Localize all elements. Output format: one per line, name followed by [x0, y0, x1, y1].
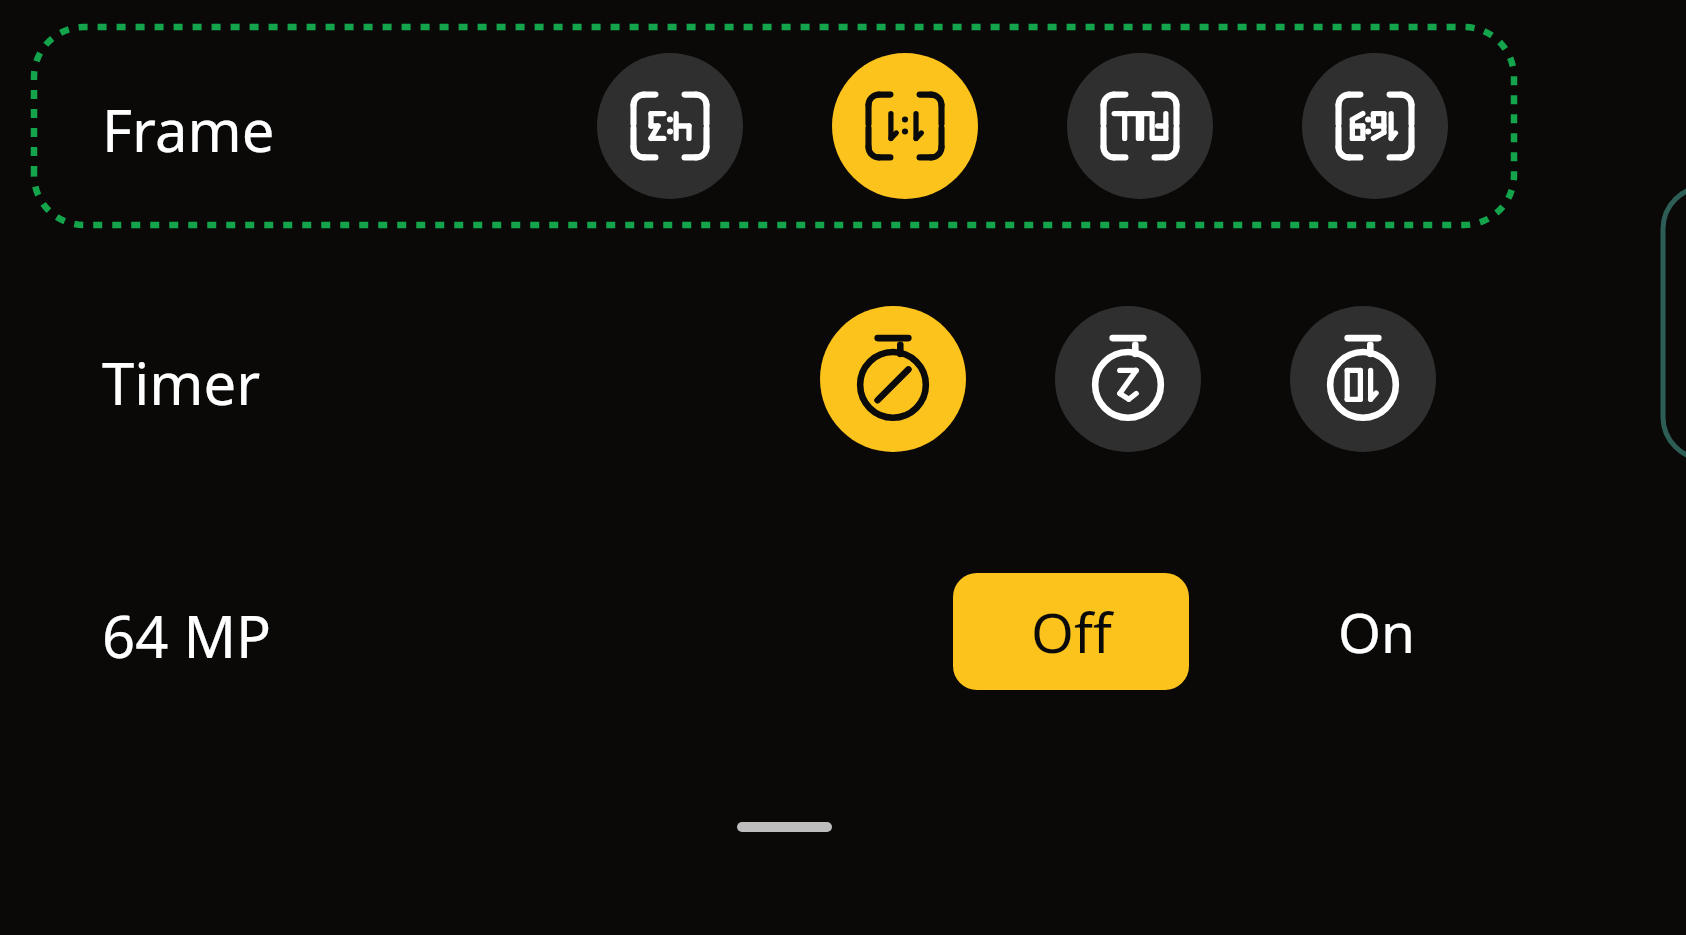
button[interactable]: Off — [953, 573, 1189, 690]
button[interactable]: Timer off — [820, 306, 966, 452]
staticText: Frame — [102, 90, 275, 169]
button[interactable]: Aspect ratio 16 by 9 — [1302, 53, 1448, 199]
staticText: 64 MP — [102, 596, 272, 675]
button[interactable]: Timer 10 seconds — [1290, 306, 1436, 452]
button[interactable]: On — [1258, 573, 1494, 690]
button[interactable]: Timer 2 seconds — [1055, 306, 1201, 452]
button[interactable]: Aspect ratio 1 by 1 — [832, 53, 978, 199]
button[interactable]: Aspect ratio 4 by 3 — [597, 53, 743, 199]
button[interactable]: Full frame — [1067, 53, 1213, 199]
staticText: Timer — [102, 343, 261, 422]
staticText: Off — [1031, 594, 1112, 669]
staticText: On — [1338, 594, 1415, 669]
